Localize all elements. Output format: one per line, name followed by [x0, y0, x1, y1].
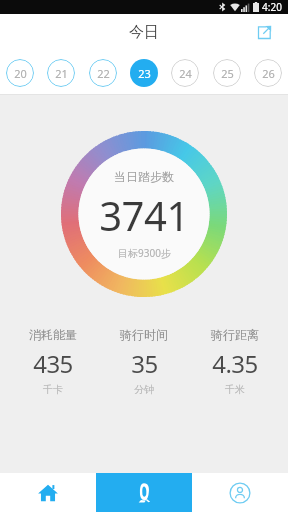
staticText: 35 — [131, 347, 158, 380]
staticText: 25 — [221, 66, 234, 81]
button[interactable]: 21 — [47, 59, 75, 87]
button[interactable]: 25 — [213, 59, 241, 87]
button[interactable]: Profile — [192, 473, 288, 512]
staticText: 4:20 — [262, 0, 282, 14]
button[interactable]: 骑行时间 — [100, 325, 188, 398]
staticText: 21 — [55, 66, 68, 81]
staticText: 23 — [138, 66, 151, 81]
staticText: 骑行时间 — [120, 327, 168, 342]
staticText: 当日踏步数 — [114, 169, 174, 184]
staticText: 22 — [97, 66, 110, 81]
button[interactable]: 20 — [6, 59, 34, 87]
button[interactable]: Activity — [96, 473, 192, 512]
staticText: 骑行距离 — [211, 327, 259, 342]
button[interactable]: 26 — [254, 59, 282, 87]
staticText: 消耗能量 — [29, 327, 77, 342]
staticText: 24 — [179, 66, 192, 81]
staticText: 3741 — [99, 188, 189, 242]
button[interactable]: Home — [0, 473, 96, 512]
button[interactable]: 24 — [171, 59, 199, 87]
staticText: 20 — [14, 66, 27, 81]
button[interactable]: 22 — [89, 59, 117, 87]
staticText: 千米 — [225, 383, 245, 396]
button[interactable]: 骑行距离 — [191, 325, 279, 398]
staticText: 4.35 — [212, 347, 258, 380]
button[interactable]: 23 — [130, 59, 158, 87]
staticText: 435 — [33, 347, 73, 380]
staticText: 目标9300步 — [118, 246, 171, 260]
staticText: 千卡 — [43, 383, 63, 396]
button[interactable]: 消耗能量 — [9, 325, 97, 398]
staticText: 26 — [262, 66, 275, 81]
button[interactable]: Share — [250, 18, 278, 46]
staticText: 分钟 — [134, 383, 154, 396]
staticText: 今日 — [129, 23, 159, 42]
